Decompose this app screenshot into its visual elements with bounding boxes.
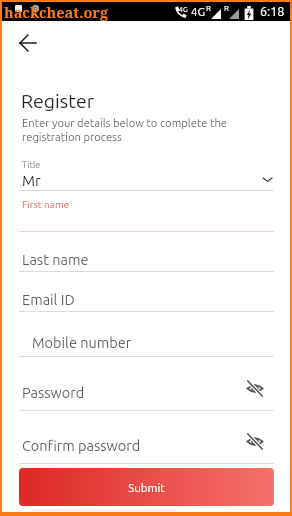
staticText: R bbox=[206, 4, 211, 13]
staticText: Email ID bbox=[22, 291, 75, 307]
staticText: hackcheat.org bbox=[4, 2, 109, 22]
staticText: Register bbox=[21, 90, 95, 112]
staticText: registration process bbox=[22, 131, 122, 144]
button[interactable]: First name bbox=[0, 197, 292, 231]
button[interactable]: Submit bbox=[19, 468, 274, 506]
staticText: Password bbox=[22, 384, 85, 400]
staticText: Title bbox=[22, 160, 41, 170]
staticText: 4G bbox=[179, 5, 188, 13]
staticText: Mobile number bbox=[32, 334, 132, 350]
staticText: Confirm password bbox=[22, 437, 141, 453]
staticText: First name bbox=[22, 199, 70, 210]
staticText: Enter your details below to complete the bbox=[22, 117, 228, 130]
button[interactable]: Confirm password bbox=[0, 429, 292, 463]
staticText: 6:18 bbox=[260, 4, 285, 18]
staticText: 4G bbox=[191, 5, 206, 18]
button[interactable]: Mobile number bbox=[0, 322, 292, 356]
staticText: Last name bbox=[22, 251, 89, 267]
button[interactable]: Back bbox=[10, 25, 46, 61]
button[interactable]: Password bbox=[0, 376, 292, 410]
staticText: Submit bbox=[128, 481, 165, 494]
button[interactable]: Title bbox=[0, 153, 292, 191]
button[interactable]: Email ID bbox=[0, 277, 292, 311]
button[interactable]: Last name bbox=[0, 237, 292, 271]
staticText: R bbox=[224, 4, 229, 13]
staticText: Mr bbox=[22, 172, 41, 189]
